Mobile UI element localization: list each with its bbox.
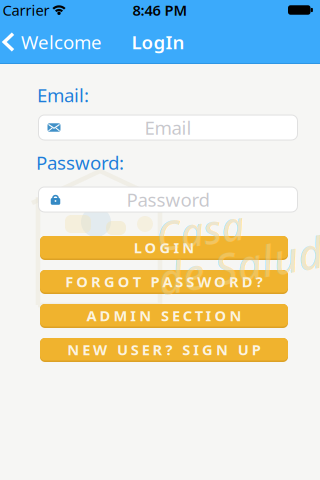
staticText: N xyxy=(67,340,79,359)
staticText: N xyxy=(182,238,194,257)
staticText: I xyxy=(193,340,199,359)
staticText: R xyxy=(229,272,239,291)
staticText: G xyxy=(202,340,213,359)
staticText: D xyxy=(99,306,110,325)
staticText: R xyxy=(91,272,101,291)
staticText: S xyxy=(186,272,194,291)
button[interactable]: LOGIN xyxy=(40,236,288,260)
staticText: E xyxy=(82,340,90,359)
staticText: C xyxy=(183,306,192,325)
staticText: ? xyxy=(256,272,263,291)
staticText: W xyxy=(197,272,211,291)
staticText: N xyxy=(216,340,228,359)
staticText: O xyxy=(214,306,226,325)
button[interactable]: NEW USER? SIGN UP xyxy=(40,338,288,362)
staticText: Email xyxy=(144,115,191,140)
staticText: W xyxy=(93,340,107,359)
button[interactable]: Back xyxy=(2,20,102,64)
staticText: O xyxy=(118,272,130,291)
staticText: I xyxy=(173,238,179,257)
staticText: O xyxy=(145,238,157,257)
staticText: Casa xyxy=(156,203,244,256)
staticText: G xyxy=(159,238,170,257)
staticText: N xyxy=(139,306,151,325)
staticText: S xyxy=(161,306,169,325)
button[interactable]: FORGOT PASSWORD? xyxy=(40,270,288,294)
staticText: de Salud xyxy=(156,237,320,293)
staticText: N xyxy=(229,306,241,325)
staticText: de Salud xyxy=(156,237,320,293)
staticText: S xyxy=(182,340,190,359)
staticText: U xyxy=(238,340,249,359)
staticText: U xyxy=(117,340,128,359)
staticText: T xyxy=(195,306,203,325)
staticText: O xyxy=(76,272,88,291)
staticText: E xyxy=(172,306,180,325)
staticText: R xyxy=(153,340,163,359)
button[interactable]: ADMIN SECTION xyxy=(40,304,288,328)
staticText: Email: xyxy=(37,83,89,107)
staticText: Casa xyxy=(156,203,244,256)
button[interactable]: Email xyxy=(38,114,298,140)
staticText: D xyxy=(242,272,253,291)
staticText: P xyxy=(151,272,160,291)
staticText: Password: xyxy=(36,150,124,175)
staticText: M xyxy=(113,306,127,325)
staticText: A xyxy=(162,272,172,291)
staticText: Password xyxy=(126,187,209,212)
staticText: Welcome xyxy=(21,30,102,54)
staticText: S xyxy=(131,340,139,359)
staticText: ? xyxy=(165,340,172,359)
staticText: G xyxy=(104,272,115,291)
staticText: P xyxy=(252,340,261,359)
staticText: LogIn xyxy=(131,30,184,54)
staticText: E xyxy=(142,340,150,359)
staticText: L xyxy=(134,238,142,257)
staticText: T xyxy=(133,272,141,291)
staticText: I xyxy=(130,306,136,325)
staticText: F xyxy=(65,272,73,291)
staticText: I xyxy=(206,306,212,325)
button[interactable]: Password xyxy=(38,186,298,212)
staticText: Carrier xyxy=(2,0,49,20)
staticText: 8:46 PM xyxy=(132,0,187,20)
staticText: S xyxy=(175,272,183,291)
staticText: O xyxy=(214,272,226,291)
staticText: A xyxy=(87,306,97,325)
